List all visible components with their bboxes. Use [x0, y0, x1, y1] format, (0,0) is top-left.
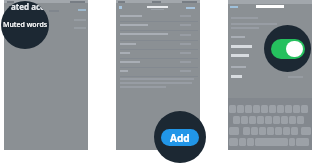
- staticText: ated acc: [8, 2, 42, 13]
- button[interactable]: Add: [161, 129, 199, 146]
- staticText: Add: [170, 131, 190, 145]
- button[interactable]: Toggle: [271, 39, 305, 59]
- button[interactable]: Muted words callout: [1, 1, 49, 49]
- staticText: Muted words: [3, 20, 48, 30]
- staticText: ated acc: [11, 1, 45, 12]
